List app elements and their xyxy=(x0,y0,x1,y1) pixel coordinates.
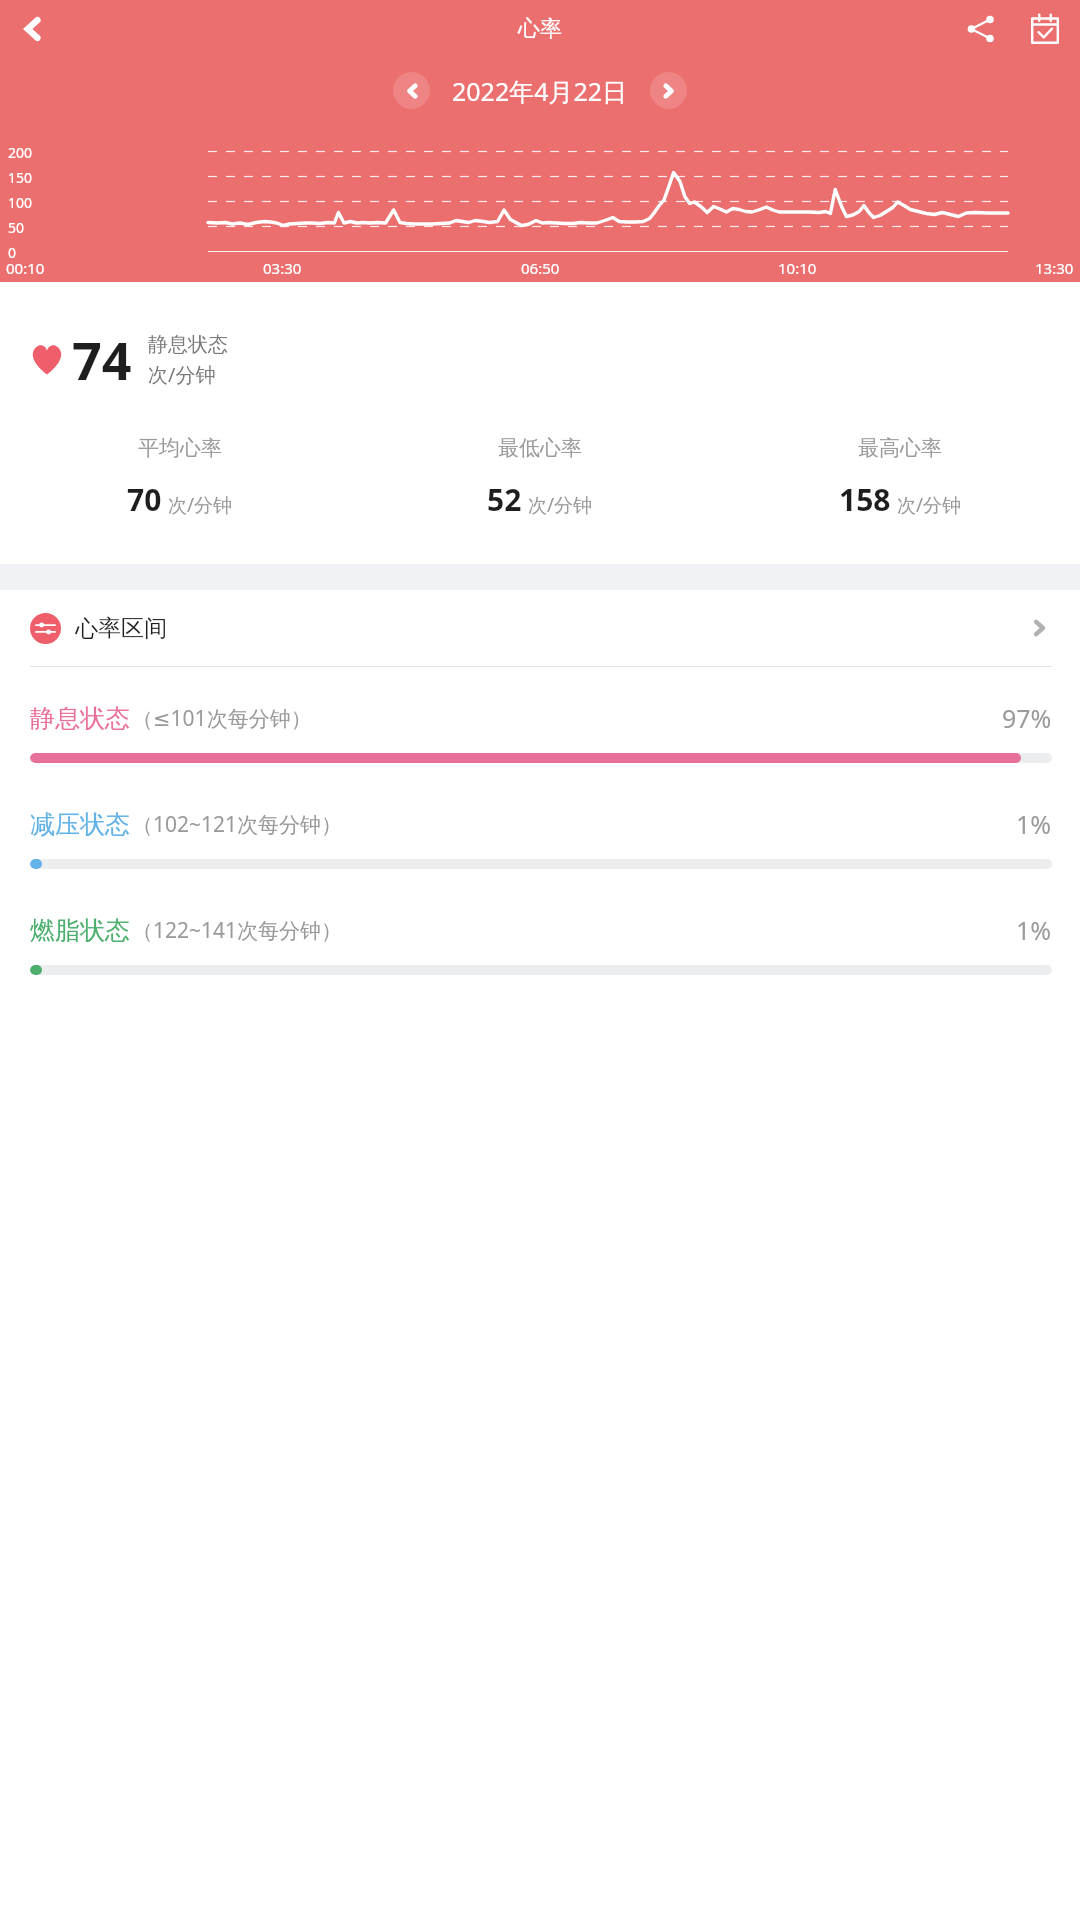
staticText: 0 xyxy=(8,243,17,262)
button[interactable]: Back xyxy=(6,3,58,55)
staticText: （≤101次每分钟） xyxy=(132,704,312,733)
staticText: 06:50 xyxy=(521,258,560,278)
staticText: 10:10 xyxy=(778,258,817,278)
staticText: （102~121次每分钟） xyxy=(132,810,343,839)
staticText: 150 xyxy=(8,168,33,187)
staticText: 50 xyxy=(8,218,25,237)
staticText: 燃脂状态 xyxy=(30,915,130,946)
staticText: 158 xyxy=(839,479,891,520)
staticText: 心率 xyxy=(518,15,562,43)
staticText: 次/分钟 xyxy=(148,361,216,388)
staticText: 1% xyxy=(1016,807,1052,841)
staticText: 74 xyxy=(72,324,132,395)
staticText: 平均心率 xyxy=(138,435,222,461)
staticText: 最低心率 xyxy=(498,435,582,461)
staticText: （122~141次每分钟） xyxy=(132,916,343,945)
staticText: 70 xyxy=(127,479,162,520)
button[interactable]: Previous day xyxy=(393,72,430,109)
staticText: 200 xyxy=(8,143,33,162)
button[interactable]: 减压状态 xyxy=(0,773,1080,879)
staticText: 最高心率 xyxy=(858,435,942,461)
staticText: 次/分钟 xyxy=(168,492,233,518)
staticText: 03:30 xyxy=(263,258,302,278)
button[interactable]: 燃脂状态 xyxy=(0,879,1080,985)
staticText: 减压状态 xyxy=(30,809,130,840)
button[interactable]: Next day xyxy=(650,72,687,109)
staticText: 13:30 xyxy=(1035,258,1074,278)
staticText: 2022年4月22日 xyxy=(452,74,628,108)
staticText: 00:10 xyxy=(6,258,45,278)
button[interactable]: 心率区间 xyxy=(0,590,1080,666)
staticText: 静息状态 xyxy=(148,332,228,357)
button[interactable]: Calendar xyxy=(1020,4,1070,54)
staticText: 52 xyxy=(487,479,522,520)
staticText: 静息状态 xyxy=(30,703,130,734)
staticText: 次/分钟 xyxy=(897,492,962,518)
button[interactable]: 静息状态 xyxy=(0,667,1080,773)
staticText: 100 xyxy=(8,193,33,212)
staticText: 97% xyxy=(1002,701,1052,735)
staticText: 次/分钟 xyxy=(528,492,593,518)
button[interactable]: Share xyxy=(956,4,1006,54)
staticText: 心率区间 xyxy=(75,614,167,643)
staticText: 1% xyxy=(1016,913,1052,947)
